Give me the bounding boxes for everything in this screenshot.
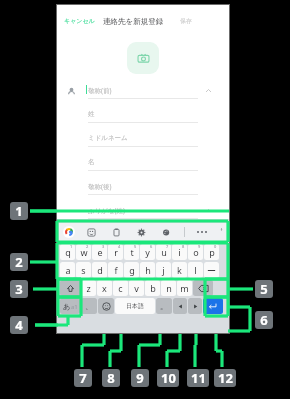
- button[interactable]: p: [204, 244, 219, 260]
- staticText: o: [193, 246, 199, 258]
- staticText: 12: [218, 369, 233, 387]
- button[interactable]: i: [172, 244, 187, 260]
- button[interactable]: w: [76, 244, 91, 260]
- button[interactable]: a: [60, 262, 75, 278]
- button[interactable]: ミドルネーム: [88, 134, 128, 142]
- staticText: 10: [161, 369, 176, 387]
- staticText: ふりがな(姓): [88, 206, 126, 215]
- staticText: 9: [198, 244, 201, 249]
- button[interactable]: e: [92, 244, 107, 260]
- button[interactable]: d: [92, 262, 107, 278]
- staticText: キャンセル: [64, 17, 95, 25]
- button[interactable]: Enter: [203, 298, 223, 314]
- staticText: 3: [102, 244, 105, 249]
- staticText: e: [97, 246, 103, 258]
- staticText: u: [161, 246, 167, 258]
- staticText: x: [102, 282, 107, 294]
- staticText: 11: [191, 369, 206, 387]
- button[interactable]: j: [156, 262, 171, 278]
- button[interactable]: 姓: [88, 110, 95, 118]
- staticText: l: [194, 264, 197, 276]
- staticText: ミドルネーム: [88, 134, 128, 142]
- staticText: a1: [71, 303, 78, 311]
- button[interactable]: n: [161, 280, 176, 296]
- staticText: s: [81, 264, 86, 276]
- staticText: a: [65, 264, 71, 276]
- button[interactable]: Emoji: [98, 298, 114, 314]
- button[interactable]: Clipboard: [110, 226, 122, 238]
- staticText: 。: [160, 301, 168, 311]
- button[interactable]: Cursor right: [188, 298, 202, 314]
- button[interactable]: c: [113, 280, 128, 296]
- button[interactable]: Settings: [135, 226, 147, 238]
- button[interactable]: t: [124, 244, 139, 260]
- staticText: i: [178, 246, 181, 258]
- staticText: 5: [260, 280, 268, 298]
- button[interactable]: z: [81, 280, 96, 296]
- staticText: w: [80, 246, 88, 258]
- button[interactable]: Voice input: [220, 226, 223, 238]
- button[interactable]: m: [177, 280, 192, 296]
- button[interactable]: Google: [63, 226, 75, 238]
- staticText: 5: [134, 244, 137, 249]
- staticText: b: [150, 282, 156, 294]
- button[interactable]: Backspace: [193, 280, 213, 296]
- button[interactable]: 名: [88, 158, 95, 166]
- button[interactable]: b: [145, 280, 160, 296]
- staticText: 3: [15, 280, 23, 298]
- button[interactable]: キャンセル: [64, 17, 95, 25]
- staticText: z: [86, 282, 91, 294]
- staticText: k: [177, 264, 182, 276]
- button[interactable]: u: [156, 244, 171, 260]
- button[interactable]: 敬称(前): [88, 86, 112, 95]
- button[interactable]: o: [188, 244, 203, 260]
- staticText: 、: [85, 301, 93, 311]
- staticText: 4: [118, 244, 121, 249]
- staticText: v: [134, 282, 139, 294]
- staticText: 0: [214, 244, 217, 249]
- button[interactable]: Shift: [60, 280, 80, 296]
- staticText: 敬称(前): [88, 86, 112, 95]
- button[interactable]: ー: [204, 262, 219, 278]
- staticText: 7: [79, 369, 87, 387]
- staticText: 1: [70, 244, 73, 249]
- staticText: 2: [86, 244, 89, 249]
- button[interactable]: l: [188, 262, 203, 278]
- button[interactable]: f: [108, 262, 123, 278]
- button[interactable]: Add photo: [127, 42, 159, 74]
- staticText: 日本語: [126, 302, 144, 310]
- button[interactable]: 保存: [180, 17, 192, 25]
- staticText: j: [162, 264, 165, 276]
- button[interactable]: v: [129, 280, 144, 296]
- staticText: 保存: [180, 17, 192, 25]
- button[interactable]: 。: [156, 298, 172, 314]
- staticText: c: [118, 282, 123, 294]
- staticText: h: [145, 264, 151, 276]
- button[interactable]: Theme: [160, 226, 172, 238]
- staticText: 7: [166, 244, 169, 249]
- button[interactable]: s: [76, 262, 91, 278]
- button[interactable]: あ: [60, 298, 80, 314]
- button[interactable]: Stickers: [85, 226, 97, 238]
- button[interactable]: Cursor left: [173, 298, 187, 314]
- staticText: あ: [63, 302, 71, 311]
- button[interactable]: 敬称(後): [88, 182, 112, 191]
- staticText: 9: [136, 369, 144, 387]
- button[interactable]: r: [108, 244, 123, 260]
- button[interactable]: g: [124, 262, 139, 278]
- staticText: d: [97, 264, 103, 276]
- button[interactable]: y: [140, 244, 155, 260]
- button[interactable]: ふりがな(姓): [88, 206, 126, 215]
- button[interactable]: x: [97, 280, 112, 296]
- staticText: r: [114, 246, 118, 258]
- button[interactable]: h: [140, 262, 155, 278]
- button[interactable]: q: [60, 244, 75, 260]
- button[interactable]: More: [196, 226, 208, 238]
- staticText: p: [209, 246, 215, 258]
- staticText: m: [180, 282, 189, 294]
- button[interactable]: k: [172, 262, 187, 278]
- button[interactable]: 、: [81, 298, 97, 314]
- button[interactable]: 日本語: [115, 298, 155, 314]
- staticText: 6: [150, 244, 153, 249]
- staticText: 1: [15, 202, 23, 220]
